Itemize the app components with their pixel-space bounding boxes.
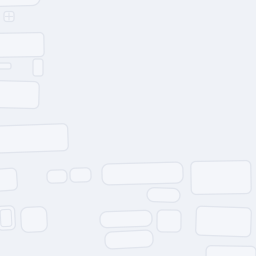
button[interactable]: Apps [4, 11, 14, 21]
